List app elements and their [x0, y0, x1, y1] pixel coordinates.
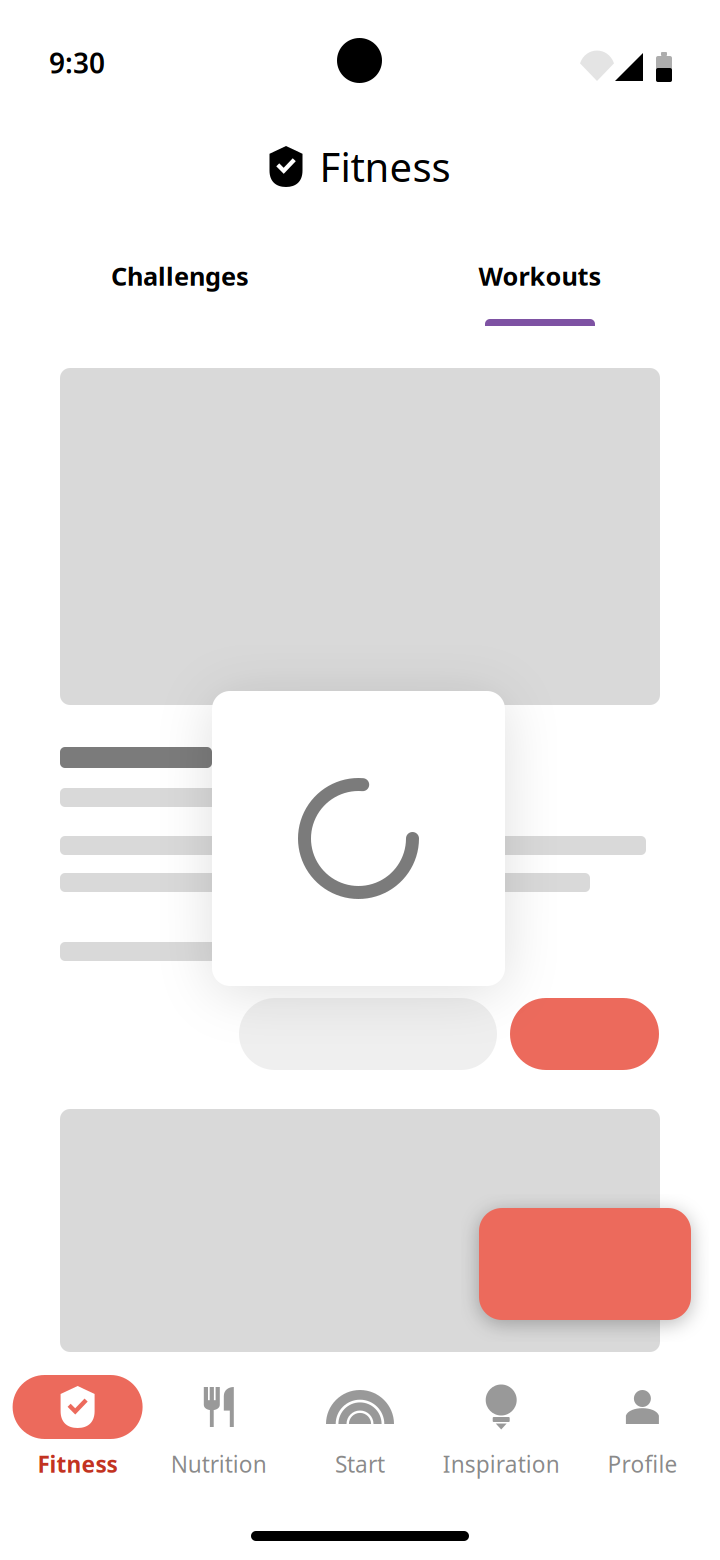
- staticText: Start: [335, 1449, 385, 1479]
- staticText: Challenges: [111, 259, 249, 293]
- staticText: Inspiration: [443, 1449, 560, 1479]
- staticText: Nutrition: [171, 1449, 267, 1479]
- staticText: Fitness: [319, 140, 450, 193]
- button[interactable]: Profile: [572, 1352, 713, 1492]
- button[interactable]: Workouts: [360, 259, 720, 326]
- staticText: Workouts: [478, 259, 601, 293]
- button[interactable]: Fitness: [7, 1352, 148, 1492]
- button[interactable]: Start: [289, 1352, 431, 1492]
- button[interactable]: Challenges: [0, 259, 360, 326]
- staticText: 9:30: [49, 44, 105, 81]
- button[interactable]: Inspiration: [431, 1352, 572, 1492]
- staticText: Fitness: [38, 1449, 118, 1479]
- button[interactable]: Nutrition: [148, 1352, 289, 1492]
- staticText: Profile: [607, 1449, 677, 1479]
